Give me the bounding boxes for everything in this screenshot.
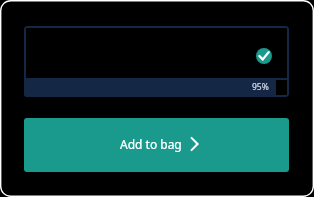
- button[interactable]: Add to bag: [24, 118, 289, 172]
- staticText: 95%: [252, 81, 269, 93]
- staticText: Add to bag: [120, 136, 182, 152]
